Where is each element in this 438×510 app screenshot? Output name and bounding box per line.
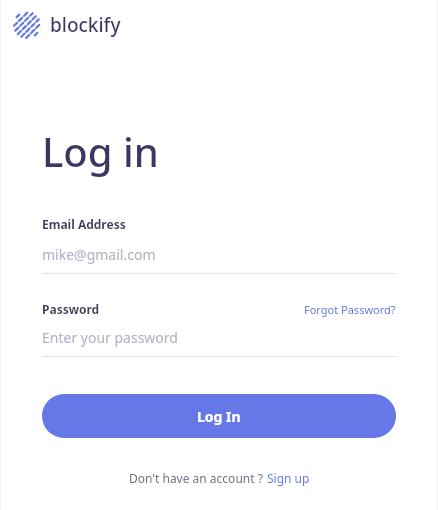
staticText: Enter your password [42,328,178,347]
button[interactable]: Log In [42,394,396,438]
button[interactable]: mike@gmail.com [42,245,396,264]
staticText: Log in [42,124,159,178]
staticText: Forgot Password? [304,302,396,317]
staticText: Email Address [42,216,126,232]
staticText: Don't have an account ? [129,470,263,486]
button[interactable]: Forgot Password? [304,302,396,317]
button[interactable]: Enter your password [42,328,396,347]
staticText: Password [42,301,100,317]
staticText: blockify [50,12,121,38]
button[interactable]: Blockify logo [14,12,121,38]
staticText: Log In [197,407,241,426]
staticText: Sign up [267,470,310,486]
staticText: mike@gmail.com [42,245,156,264]
button[interactable]: Sign up [267,470,310,486]
other: Blockify logo [14,12,40,38]
